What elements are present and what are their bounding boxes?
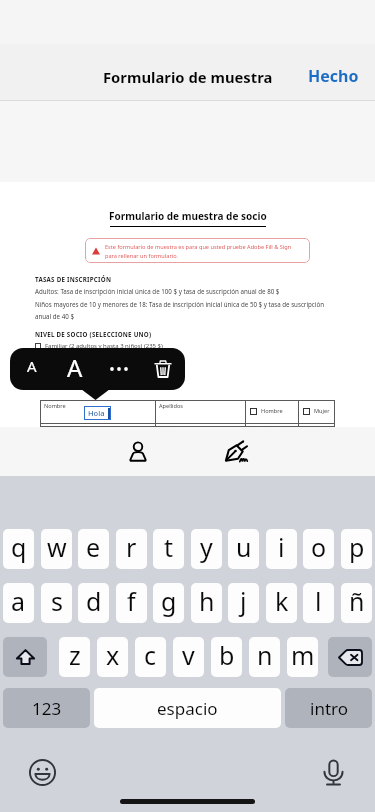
staticText: NIVEL DE SOCIO (SELECCIONE UNO) [35, 330, 152, 338]
button[interactable]: Retroceso [328, 637, 372, 677]
button[interactable]: A [57, 349, 93, 385]
staticText: o [311, 530, 327, 564]
button[interactable]: f [116, 583, 147, 623]
staticText: b [219, 638, 235, 672]
button[interactable]: u [228, 529, 259, 569]
staticText: Mujer [314, 407, 330, 415]
staticText: z [69, 638, 81, 672]
staticText: k [275, 584, 289, 618]
button[interactable]: a [3, 583, 34, 623]
button[interactable]: o [303, 529, 334, 569]
staticText: ñ [349, 584, 365, 618]
staticText: j [240, 584, 247, 618]
button[interactable]: Eliminar [145, 351, 181, 387]
button[interactable]: Firma [218, 434, 254, 470]
button[interactable]: w [41, 529, 72, 569]
staticText: INFORMACIÓN PERSONAL [35, 382, 124, 391]
staticText: g [161, 584, 177, 618]
staticText: Familiar (2 adultos y hasta 3 niños) (23… [45, 342, 163, 350]
button[interactable]: Dictado [317, 756, 349, 788]
button[interactable]: n [249, 637, 280, 677]
button[interactable]: Más opciones [101, 351, 137, 387]
staticText: Adultos: Tasa de inscripción inicial úni… [35, 287, 300, 295]
button[interactable]: A [14, 348, 50, 384]
button[interactable]: i [266, 529, 297, 569]
button[interactable]: r [116, 529, 147, 569]
staticText: Hola [88, 408, 105, 418]
staticText: y [200, 530, 213, 564]
button[interactable]: k [266, 583, 297, 623]
staticText: i [278, 530, 285, 564]
staticText: TASAS DE INSCRIPCIÓN [35, 275, 112, 283]
staticText: Dirección postal [44, 424, 87, 427]
staticText: Niños mayores de 10 y menores de 18: Tas… [35, 300, 335, 308]
staticText: p [349, 530, 365, 564]
staticText: Estado/provincia [249, 424, 293, 427]
button[interactable]: Mayúsculas [3, 637, 47, 677]
staticText: Código postal [302, 424, 335, 427]
staticText: 123 [32, 697, 62, 720]
button[interactable]: s [41, 583, 72, 623]
staticText: Este formulario de muestra es para que u… [105, 243, 292, 259]
staticText: q [11, 530, 27, 564]
button[interactable]: z [59, 637, 90, 677]
staticText: Pareja (2 adultos) (165 $) [45, 355, 115, 363]
staticText: Ciudad [159, 424, 178, 427]
button[interactable]: Emoji [26, 756, 58, 788]
staticText: h [199, 584, 215, 618]
staticText: A [27, 356, 37, 376]
staticText: u [236, 530, 252, 564]
button[interactable]: Hecho [294, 55, 375, 97]
staticText: r [126, 530, 137, 564]
button[interactable]: intro [285, 688, 372, 728]
staticText: a [11, 584, 26, 618]
button[interactable]: 123 [3, 688, 90, 728]
staticText: e [86, 530, 101, 564]
staticText: n [257, 638, 273, 672]
button[interactable]: y [191, 529, 222, 569]
button[interactable]: h [191, 583, 222, 623]
button[interactable]: j [228, 583, 259, 623]
staticText: l [315, 584, 322, 618]
staticText: anual de 40 $ [35, 312, 335, 320]
button[interactable]: Rellenar datos personales [120, 434, 156, 470]
button[interactable]: t [153, 529, 184, 569]
staticText: A [67, 351, 83, 384]
button[interactable]: b [211, 637, 242, 677]
staticText: Nombre [44, 402, 66, 410]
staticText: Hecho [308, 65, 359, 87]
staticText: v [182, 638, 195, 672]
staticText: Formulario de muestra de socio [109, 209, 267, 223]
staticText: s [51, 584, 63, 618]
button[interactable]: q [3, 529, 34, 569]
staticText: w [47, 530, 67, 564]
button[interactable]: m [287, 637, 318, 677]
button[interactable]: e [78, 529, 109, 569]
staticText: t [164, 530, 174, 564]
button[interactable]: c [135, 637, 166, 677]
button[interactable]: ñ [341, 583, 372, 623]
button[interactable]: g [153, 583, 184, 623]
button[interactable]: espacio [94, 688, 281, 728]
button[interactable]: p [341, 529, 372, 569]
staticText: intro [310, 697, 348, 720]
button[interactable]: l [303, 583, 334, 623]
staticText: c [144, 638, 157, 672]
staticText: espacio [157, 697, 218, 720]
staticText: x [106, 638, 120, 672]
button[interactable]: x [97, 637, 128, 677]
staticText: Hombre [261, 407, 283, 415]
staticText: d [86, 584, 102, 618]
button[interactable]: d [78, 583, 109, 623]
button[interactable]: v [173, 637, 204, 677]
staticText: Formulario de muestra [103, 67, 273, 87]
staticText: f [127, 584, 136, 618]
staticText: m [291, 638, 315, 672]
staticText: Apellidos [159, 402, 184, 410]
